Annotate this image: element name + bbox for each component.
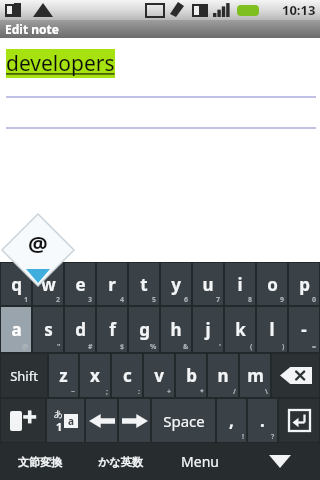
staticText: a xyxy=(11,318,22,341)
staticText: f xyxy=(109,318,116,341)
staticText: 文節変換 xyxy=(18,455,62,469)
button[interactable]: Move cursor left xyxy=(86,399,117,442)
staticText: g xyxy=(139,318,150,341)
staticText: j xyxy=(205,318,211,341)
staticText: y xyxy=(171,273,181,296)
button[interactable]: Enter xyxy=(279,399,319,442)
staticText: あ xyxy=(54,408,64,419)
staticText: @ xyxy=(28,228,48,258)
button[interactable]: - xyxy=(289,307,319,352)
staticText: Menu xyxy=(181,452,219,471)
staticText: u xyxy=(202,273,214,296)
button[interactable]: y xyxy=(161,263,191,305)
staticText: ! xyxy=(242,432,244,442)
button[interactable]: a xyxy=(1,307,31,352)
staticText: developers xyxy=(6,49,115,78)
staticText: o xyxy=(267,273,278,296)
staticText: e xyxy=(75,273,86,296)
staticText: b xyxy=(186,364,197,387)
staticText: " xyxy=(57,342,61,352)
button[interactable]: v xyxy=(144,354,174,397)
staticText: w xyxy=(41,273,56,296)
button[interactable]: o xyxy=(257,263,287,305)
staticText: Space xyxy=(163,411,205,431)
staticText: r xyxy=(108,273,116,296)
staticText: v xyxy=(154,364,164,387)
staticText: 1 xyxy=(56,419,63,434)
staticText: ~ xyxy=(71,387,76,397)
button[interactable]: j xyxy=(193,307,223,352)
staticText: s xyxy=(44,318,53,341)
staticText: k xyxy=(235,318,246,341)
staticText: : xyxy=(138,387,140,397)
button[interactable]: Space xyxy=(152,399,215,442)
button[interactable]: Backspace xyxy=(272,354,319,397)
button[interactable]: p xyxy=(289,263,319,305)
staticText: # xyxy=(88,342,93,352)
button[interactable]: 文節変換 xyxy=(1,444,79,479)
staticText: * xyxy=(200,387,204,397)
button[interactable]: s xyxy=(33,307,63,352)
staticText: 10:13 xyxy=(282,1,316,19)
button[interactable]: b xyxy=(176,354,206,397)
staticText: 9 xyxy=(280,295,285,305)
staticText: % xyxy=(150,342,157,352)
button[interactable]: t xyxy=(129,263,159,305)
staticText: d xyxy=(75,318,86,341)
button[interactable]: Input method settings xyxy=(1,399,45,442)
staticText: a xyxy=(68,414,74,428)
button[interactable]: i xyxy=(225,263,255,305)
button[interactable]: Switch kana alphanumeric xyxy=(47,399,84,442)
staticText: & xyxy=(183,342,189,352)
staticText: . xyxy=(260,409,265,432)
staticText: 0 xyxy=(312,295,317,305)
button[interactable]: q xyxy=(1,263,31,305)
button[interactable]: x xyxy=(80,354,110,397)
staticText: i xyxy=(237,273,243,296)
staticText: 3 xyxy=(88,295,93,305)
button[interactable]: Menu xyxy=(161,444,239,479)
staticText: ) xyxy=(282,342,285,352)
staticText: q xyxy=(11,273,22,296)
staticText: @ xyxy=(22,342,29,352)
staticText: 1 xyxy=(24,295,29,305)
button[interactable]: k xyxy=(225,307,255,352)
staticText: 6 xyxy=(184,295,189,305)
staticText: ' xyxy=(219,342,221,352)
button[interactable]: l xyxy=(257,307,287,352)
staticText: , xyxy=(229,409,234,432)
button[interactable]: h xyxy=(161,307,191,352)
button[interactable]: e xyxy=(65,263,95,305)
staticText: t xyxy=(140,273,148,296)
button[interactable]: g xyxy=(129,307,159,352)
staticText: / xyxy=(233,387,236,397)
staticText: l xyxy=(269,318,275,341)
button[interactable]: . xyxy=(248,399,277,442)
staticText: x xyxy=(90,364,100,387)
button[interactable]: u xyxy=(193,263,223,305)
staticText: h xyxy=(170,318,182,341)
staticText: z xyxy=(59,364,68,387)
button[interactable]: c xyxy=(112,354,142,397)
button[interactable]: Shift xyxy=(1,354,47,397)
staticText: 8 xyxy=(248,295,253,305)
button[interactable]: n xyxy=(208,354,238,397)
button[interactable]: , xyxy=(217,399,246,442)
staticText: 4 xyxy=(120,295,125,305)
staticText: \ xyxy=(265,387,268,397)
button[interactable]: developers xyxy=(6,49,115,78)
button[interactable]: z xyxy=(49,354,78,397)
button[interactable]: かな英数 xyxy=(81,444,159,479)
button[interactable]: d xyxy=(65,307,95,352)
button[interactable]: r xyxy=(97,263,127,305)
staticText: かな英数 xyxy=(98,455,143,469)
button[interactable]: f xyxy=(97,307,127,352)
staticText: - xyxy=(301,318,307,341)
staticText: p xyxy=(299,273,310,296)
button[interactable]: m xyxy=(240,354,270,397)
button[interactable]: w xyxy=(33,263,63,305)
button[interactable]: Move cursor right xyxy=(119,399,150,442)
staticText: $ xyxy=(120,342,125,352)
staticText: Edit note xyxy=(5,21,59,37)
button[interactable]: Hide keyboard xyxy=(240,443,320,480)
